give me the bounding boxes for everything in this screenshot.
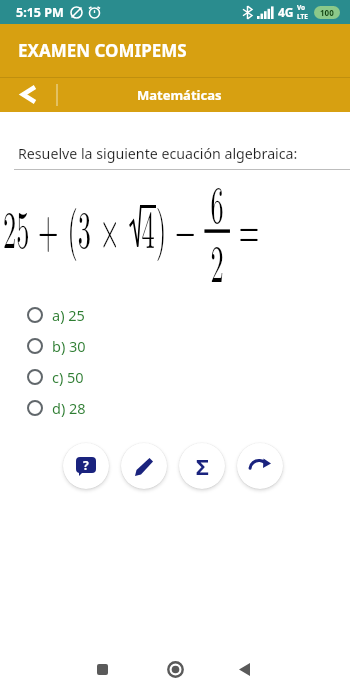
button[interactable] bbox=[139, 656, 212, 700]
button[interactable]: b) 30 bbox=[0, 330, 350, 361]
button[interactable] bbox=[121, 443, 167, 489]
button[interactable]: c) 50 bbox=[0, 361, 350, 392]
staticText: Resuelve la siguiente ecuación algebraic… bbox=[18, 144, 298, 163]
staticText: b) 30 bbox=[52, 336, 86, 356]
staticText: = bbox=[230, 189, 260, 263]
staticText: 25 + (3 × bbox=[3, 189, 130, 263]
button[interactable]: d) 28 bbox=[0, 392, 350, 423]
staticText: 4 bbox=[142, 189, 155, 263]
staticText: 4G bbox=[278, 4, 294, 20]
staticText: Σ bbox=[196, 451, 209, 481]
staticText: d) 28 bbox=[52, 398, 86, 418]
staticText: EXAMEN COMIPEMS bbox=[18, 39, 187, 62]
button[interactable] bbox=[0, 77, 56, 112]
staticText: ? bbox=[83, 457, 89, 473]
button[interactable] bbox=[237, 443, 283, 489]
staticText: Matemáticas bbox=[137, 86, 222, 104]
staticText: 2 bbox=[210, 223, 224, 297]
staticText: 6 bbox=[210, 163, 224, 238]
button[interactable]: ? bbox=[63, 443, 109, 489]
button[interactable] bbox=[66, 656, 139, 700]
staticText: LTE bbox=[297, 12, 308, 21]
staticText: 100 bbox=[320, 7, 334, 18]
button[interactable] bbox=[212, 656, 285, 700]
button[interactable]: a) 25 bbox=[0, 299, 350, 330]
staticText: 5:15 PM bbox=[16, 4, 64, 21]
staticText: c) 50 bbox=[52, 367, 84, 387]
staticText: Vo bbox=[297, 3, 306, 12]
staticText: a) 25 bbox=[52, 305, 85, 325]
button[interactable]: Σ bbox=[179, 443, 225, 489]
staticText: ) − bbox=[156, 189, 204, 263]
